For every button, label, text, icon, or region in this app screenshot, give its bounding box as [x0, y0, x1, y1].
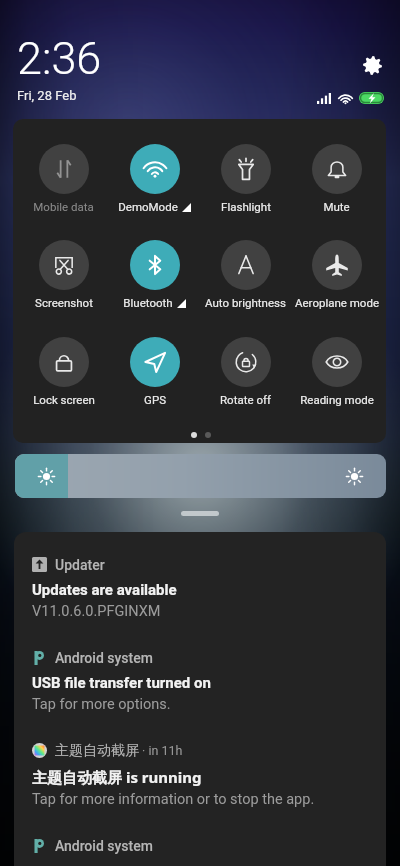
staticText: 2:36: [17, 32, 102, 85]
staticText: Tap for more options.: [32, 696, 171, 713]
button[interactable]: Auto brightness: [200, 240, 291, 309]
staticText: Reading mode: [300, 393, 374, 406]
button[interactable]: Android system: [14, 649, 386, 735]
button[interactable]: Reading mode: [291, 337, 382, 406]
staticText: Fri, 28 Feb: [17, 88, 77, 103]
button[interactable]: Updater: [14, 556, 386, 642]
staticText: Mobile data: [33, 200, 94, 213]
staticText: Screenshot: [35, 296, 93, 309]
staticText: USB file transfer turned on: [32, 674, 211, 692]
button[interactable]: Settings: [358, 51, 386, 79]
button[interactable]: 主题自动截屏: [14, 742, 386, 828]
button[interactable]: Android system: [14, 837, 386, 866]
staticText: Android system: [55, 838, 153, 854]
staticText: Auto brightness: [205, 296, 286, 309]
staticText: Lock screen: [33, 393, 95, 406]
button[interactable]: Bluetooth: [109, 240, 200, 309]
staticText: GPS: [144, 393, 166, 406]
button[interactable]: Brightness: [15, 454, 386, 498]
staticText: · in 11h: [139, 743, 183, 758]
button[interactable]: Lock screen: [18, 337, 109, 406]
button[interactable]: Rotate off: [200, 337, 291, 406]
staticText: V11.0.6.0.PFGINXM: [32, 603, 161, 620]
button[interactable]: Flashlight: [200, 144, 291, 213]
staticText: Aeroplane mode: [295, 296, 379, 309]
button[interactable]: Aeroplane mode: [291, 240, 382, 309]
staticText: Updates are available: [32, 581, 177, 599]
button[interactable]: Mobile data: [18, 144, 109, 213]
staticText: Tap for more information or to stop the …: [32, 791, 315, 808]
staticText: Bluetooth: [123, 296, 173, 309]
staticText: Rotate off: [220, 393, 271, 406]
staticText: Android system: [55, 650, 153, 666]
staticText: 主题自动截屏 is running: [32, 767, 202, 787]
button[interactable]: GPS: [109, 337, 200, 406]
button[interactable]: DemoMode: [109, 144, 200, 213]
staticText: Mute: [323, 200, 350, 213]
staticText: DemoMode: [118, 200, 178, 213]
staticText: 主题自动截屏: [55, 742, 139, 759]
button[interactable]: Mute: [291, 144, 382, 213]
staticText: Updater: [55, 557, 105, 573]
staticText: Flashlight: [221, 200, 271, 213]
button[interactable]: Screenshot: [18, 240, 109, 309]
